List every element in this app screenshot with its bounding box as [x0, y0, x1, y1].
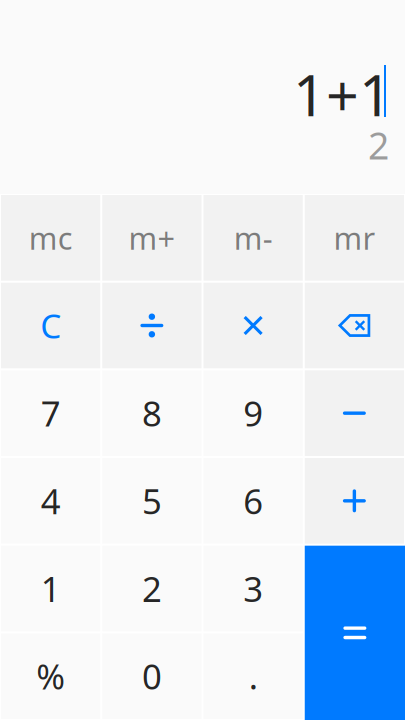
button[interactable]: 2	[101, 545, 202, 632]
button[interactable]: .	[202, 632, 304, 720]
button[interactable]: mc	[0, 194, 101, 282]
button[interactable]: Plus	[304, 457, 405, 545]
staticText: mr	[333, 217, 375, 258]
staticText: %	[36, 653, 65, 699]
button[interactable]: Equals	[304, 545, 405, 720]
button[interactable]: mr	[304, 194, 405, 282]
staticText: 9	[243, 390, 263, 436]
staticText: 8	[142, 390, 162, 436]
staticText: .	[249, 653, 258, 699]
button[interactable]: Multiply	[202, 282, 304, 369]
button[interactable]: Delete	[304, 282, 405, 369]
staticText: 5	[142, 478, 162, 524]
button[interactable]: 9	[202, 369, 304, 457]
button[interactable]: Minus	[304, 369, 405, 457]
staticText: C	[40, 303, 61, 348]
button[interactable]: 4	[0, 457, 101, 545]
staticText: 2	[368, 120, 389, 170]
staticText: 7	[41, 390, 61, 436]
staticText: m-	[234, 217, 273, 258]
staticText: 4	[41, 478, 61, 524]
button[interactable]: 8	[101, 369, 202, 457]
staticText: 3	[243, 565, 263, 611]
button[interactable]: C	[0, 282, 101, 369]
staticText: 1	[41, 565, 61, 611]
button[interactable]: %	[0, 632, 101, 720]
staticText: m+	[128, 217, 175, 258]
button[interactable]: m-	[202, 194, 304, 282]
button[interactable]: 3	[202, 545, 304, 632]
button[interactable]: 7	[0, 369, 101, 457]
staticText: 2	[142, 565, 162, 611]
button[interactable]: 0	[101, 632, 202, 720]
button[interactable]: 6	[202, 457, 304, 545]
staticText: 1+1	[293, 56, 392, 132]
staticText: mc	[29, 217, 73, 258]
button[interactable]: Divide	[101, 282, 202, 369]
button[interactable]: m+	[101, 194, 202, 282]
button[interactable]: 1	[0, 545, 101, 632]
staticText: 0	[142, 653, 162, 699]
staticText: 6	[243, 478, 263, 524]
button[interactable]: 5	[101, 457, 202, 545]
